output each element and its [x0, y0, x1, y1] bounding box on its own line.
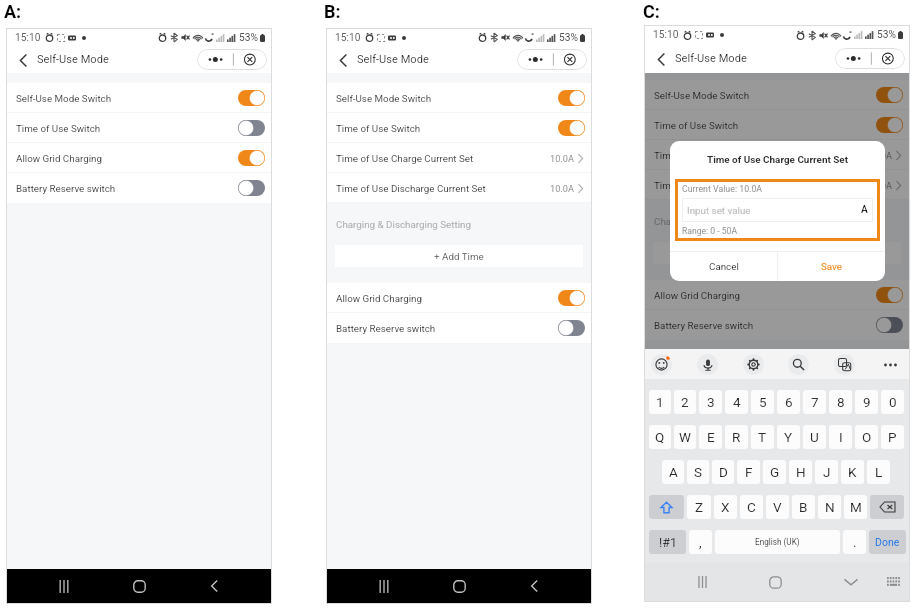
button[interactable]: 0	[881, 390, 904, 414]
button[interactable]: On	[876, 117, 903, 133]
button[interactable]: W	[674, 425, 696, 449]
button[interactable]: ,	[689, 530, 712, 554]
button[interactable]: U	[803, 425, 826, 449]
button[interactable]: N	[818, 495, 841, 519]
button[interactable]: Voice input	[697, 354, 718, 375]
button[interactable]: Time of Use Switch	[327, 113, 591, 143]
button[interactable]: Off	[558, 320, 585, 336]
button[interactable]: Self-Use Mode Switch	[327, 83, 591, 113]
button[interactable]: 6	[777, 390, 800, 414]
button[interactable]: Settings	[743, 354, 764, 375]
button[interactable]: Time of Use Discharge Current Set	[327, 173, 591, 203]
button[interactable]: Hide keyboard	[838, 569, 864, 595]
staticText: H	[796, 464, 806, 480]
button[interactable]: Time of Use Charge Current Set	[645, 140, 909, 170]
button[interactable]: I	[829, 425, 852, 449]
button[interactable]: Keyboard	[881, 569, 907, 595]
button[interactable]: Done	[869, 530, 906, 554]
button[interactable]: !#1	[649, 530, 686, 554]
button[interactable]: 3	[699, 390, 722, 414]
button[interactable]: Back	[653, 51, 669, 67]
button[interactable]: On	[876, 87, 903, 103]
button[interactable]: Home	[125, 572, 153, 600]
button[interactable]: B	[792, 495, 815, 519]
button[interactable]: Back	[335, 52, 351, 68]
staticText: 15:10	[15, 32, 41, 44]
button[interactable]: On	[558, 90, 585, 106]
button[interactable]: Home	[762, 569, 788, 595]
button[interactable]: 5	[751, 390, 774, 414]
button[interactable]: Off	[238, 120, 265, 136]
button[interactable]: Off	[876, 317, 903, 333]
button[interactable]: T	[751, 425, 774, 449]
button[interactable]: Time of Use Charge Current Set	[327, 143, 591, 173]
button[interactable]: F	[737, 460, 760, 484]
button[interactable]: Recents	[50, 572, 78, 600]
button[interactable]: Time of Use Switch	[7, 113, 271, 143]
button[interactable]: K	[841, 460, 864, 484]
button[interactable]: V	[766, 495, 789, 519]
button[interactable]: S	[687, 460, 709, 484]
button[interactable]: Menu	[517, 49, 587, 70]
button[interactable]: On	[558, 120, 585, 136]
button[interactable]: Shift	[649, 495, 684, 519]
button[interactable]: Off	[238, 180, 265, 196]
button[interactable]: X	[714, 495, 737, 519]
button[interactable]: A	[662, 460, 684, 484]
button[interactable]: Backspace	[870, 495, 904, 519]
button[interactable]: J	[815, 460, 838, 484]
button[interactable]: Allow Grid Charging	[645, 280, 909, 310]
button[interactable]: 8	[829, 390, 852, 414]
button[interactable]: Y	[777, 425, 800, 449]
button[interactable]: Emoji	[651, 354, 672, 375]
button[interactable]: Battery Reserve switch	[645, 310, 909, 340]
button[interactable]: Battery Reserve switch	[327, 313, 591, 343]
button[interactable]: Self-Use Mode Switch	[7, 83, 271, 113]
button[interactable]: L	[867, 460, 890, 484]
button[interactable]: Home	[445, 572, 473, 600]
button[interactable]: Q	[649, 425, 671, 449]
button[interactable]: Allow Grid Charging	[7, 143, 271, 173]
button[interactable]: + Add Time	[335, 245, 583, 267]
button[interactable]: Z	[687, 495, 711, 519]
button[interactable]: On	[238, 150, 265, 166]
button[interactable]: On	[876, 287, 903, 303]
button[interactable]: Save	[778, 252, 885, 281]
button[interactable]: G	[763, 460, 786, 484]
staticText: ,	[699, 534, 702, 550]
button[interactable]: Recents	[689, 569, 715, 595]
button[interactable]: Search	[788, 354, 809, 375]
button[interactable]: Translate	[834, 354, 855, 375]
button[interactable]: 7	[803, 390, 826, 414]
button[interactable]: English (UK)	[715, 530, 840, 554]
button[interactable]: Battery Reserve switch	[7, 173, 271, 203]
button[interactable]: Recents	[370, 572, 398, 600]
button[interactable]: .	[843, 530, 866, 554]
button[interactable]: R	[725, 425, 748, 449]
button[interactable]: Back	[200, 572, 228, 600]
button[interactable]: C	[740, 495, 763, 519]
button[interactable]: Time of Use Switch	[645, 110, 909, 140]
button[interactable]: 2	[674, 390, 696, 414]
button[interactable]: Self-Use Mode Switch	[645, 80, 909, 110]
button[interactable]: O	[855, 425, 878, 449]
button[interactable]: H	[789, 460, 812, 484]
button[interactable]: Menu	[835, 48, 905, 69]
button[interactable]: 1	[649, 390, 671, 414]
button[interactable]: P	[881, 425, 904, 449]
button[interactable]: More	[880, 354, 901, 375]
button[interactable]: Cancel	[670, 252, 777, 281]
button[interactable]: Time of Use Discharge Current Set	[645, 170, 909, 200]
button[interactable]: Back	[520, 572, 548, 600]
button[interactable]: On	[558, 290, 585, 306]
button[interactable]: D	[712, 460, 734, 484]
button[interactable]: M	[844, 495, 867, 519]
button[interactable]: 4	[725, 390, 748, 414]
button[interactable]: E	[699, 425, 722, 449]
button[interactable]: Back	[15, 52, 31, 68]
button[interactable]: Menu	[197, 49, 267, 70]
button[interactable]: 9	[855, 390, 878, 414]
button[interactable]: Allow Grid Charging	[327, 283, 591, 313]
button[interactable]: + Add Time	[653, 242, 901, 264]
button[interactable]: On	[238, 90, 265, 106]
